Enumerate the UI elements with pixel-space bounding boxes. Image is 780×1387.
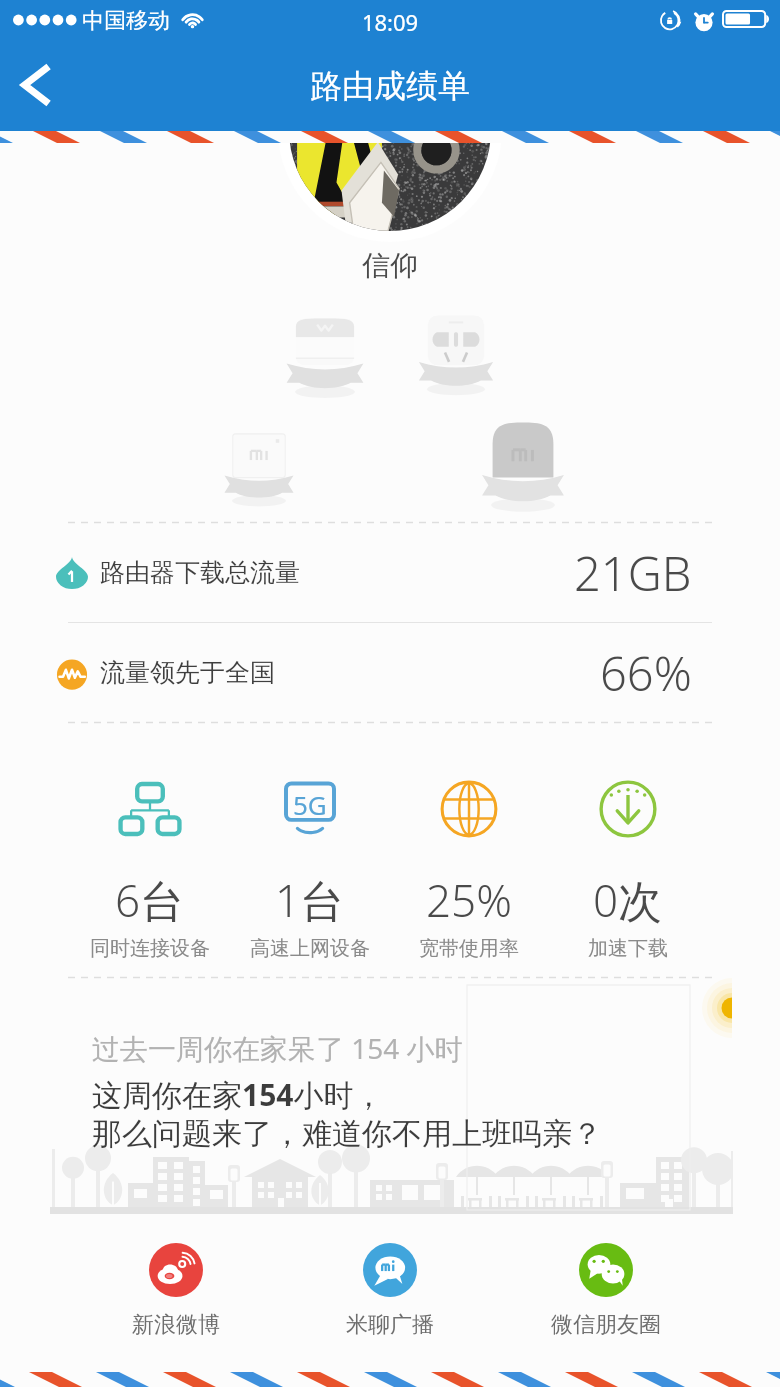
staticText: 18:09 <box>0 7 780 37</box>
staticText: 路由成绩单 <box>310 66 470 106</box>
staticText: 21GB <box>574 541 692 605</box>
staticText: 25% <box>426 870 512 930</box>
staticText: 过去一周你在家呆了 154 小时 <box>92 1029 463 1067</box>
button[interactable]: Back <box>2 41 70 129</box>
button[interactable]: 微信朋友圈 <box>516 1243 696 1339</box>
staticText: 微信朋友圈 <box>551 1311 661 1339</box>
staticText: 加速下载 <box>588 936 668 961</box>
staticText: 6台 <box>115 870 185 930</box>
button[interactable]: 5G <box>230 777 390 961</box>
button[interactable]: 路由器下载总流量 <box>0 523 780 622</box>
staticText: 米聊广播 <box>346 1311 434 1339</box>
staticText: 66% <box>600 641 692 705</box>
staticText: 信仰 <box>0 248 780 283</box>
button[interactable]: 米聊广播 <box>300 1243 480 1339</box>
button[interactable]: 新浪微博 <box>86 1243 266 1339</box>
button[interactable]: 流量领先于全国 <box>0 623 780 722</box>
staticText: 这周你在家154小时， 那么问题来了，难道你不用上班吗亲？ <box>92 1074 602 1153</box>
staticText: 5G <box>293 787 327 822</box>
button[interactable]: 25% <box>389 777 549 961</box>
staticText: 中国移动 <box>82 7 170 35</box>
staticText: 0次 <box>593 870 663 930</box>
button[interactable]: 6台 <box>70 777 230 961</box>
staticText: 路由器下载总流量 <box>100 557 300 588</box>
staticText: 同时连接设备 <box>90 936 210 961</box>
staticText: 宽带使用率 <box>419 936 519 961</box>
button[interactable]: 0次 <box>548 777 708 961</box>
staticText: 高速上网设备 <box>250 936 370 961</box>
staticText: 1台 <box>275 870 345 930</box>
staticText: 流量领先于全国 <box>100 657 275 688</box>
staticText: 新浪微博 <box>132 1311 220 1339</box>
